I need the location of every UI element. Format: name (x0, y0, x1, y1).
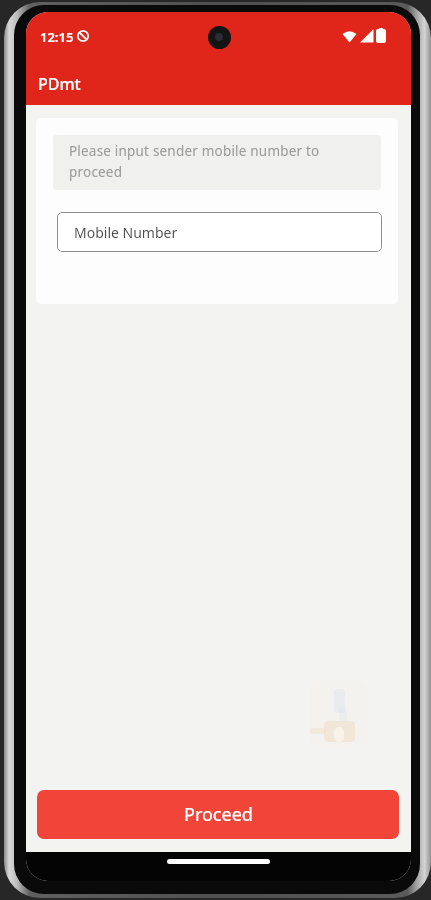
staticText: Mobile Number (74, 223, 178, 242)
button[interactable]: Proceed (37, 790, 399, 839)
staticText: Proceed (184, 802, 253, 827)
button[interactable]: Mobile Number (57, 212, 382, 252)
staticText: 12:15 (40, 28, 74, 46)
staticText: PDmt (38, 73, 81, 95)
staticText: Please input sender mobile number to pro… (69, 142, 320, 181)
